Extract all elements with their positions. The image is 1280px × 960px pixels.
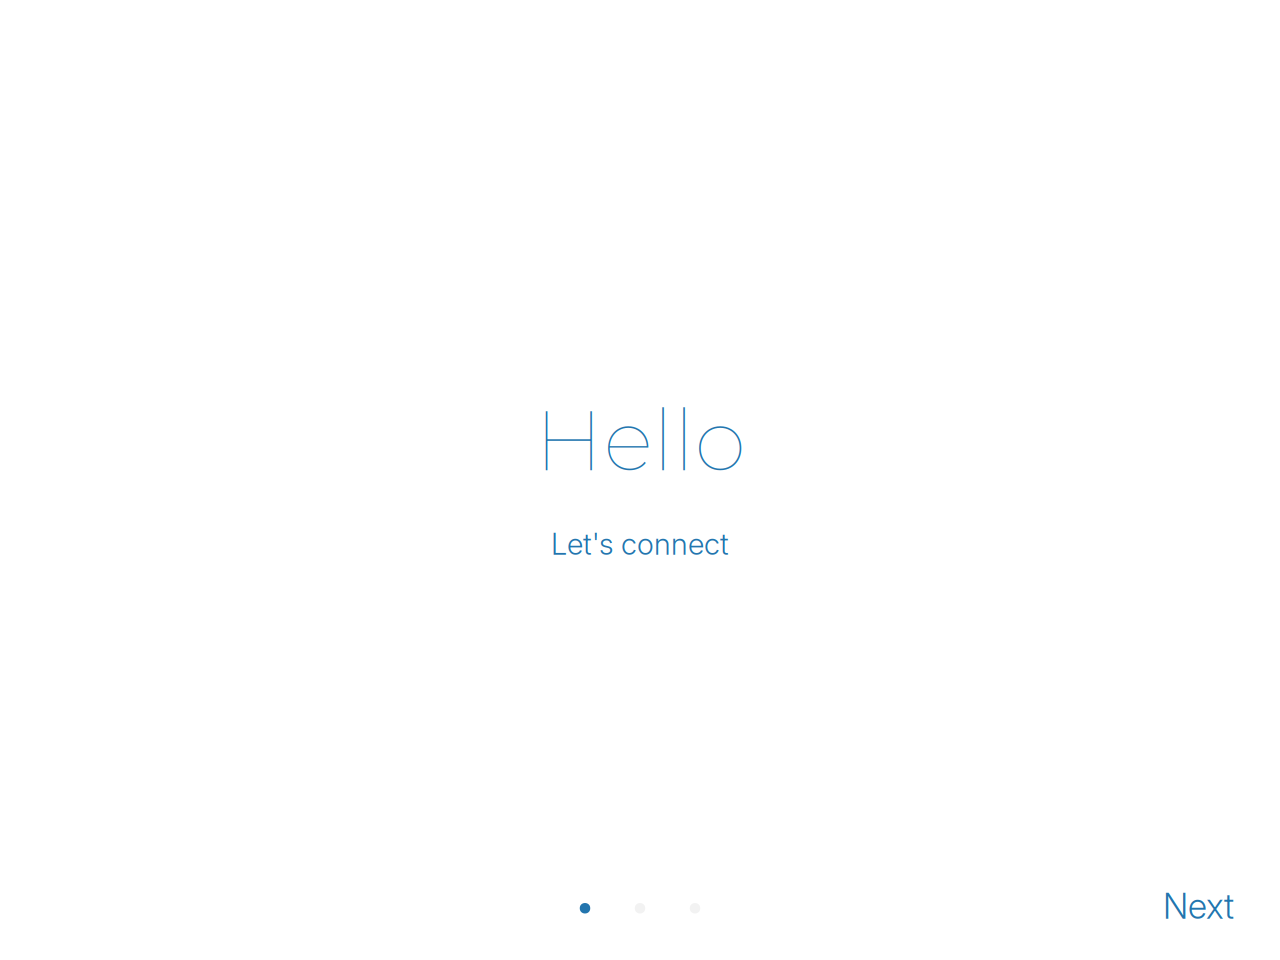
button[interactable]: Page 1 <box>580 903 590 913</box>
staticText: Hello <box>534 389 745 491</box>
staticText: Let's connect <box>551 526 729 562</box>
button[interactable]: Page 3 <box>690 903 700 913</box>
button[interactable]: Page 2 <box>635 903 645 913</box>
button[interactable]: Next <box>1163 885 1234 927</box>
staticText: Next <box>1163 885 1234 927</box>
